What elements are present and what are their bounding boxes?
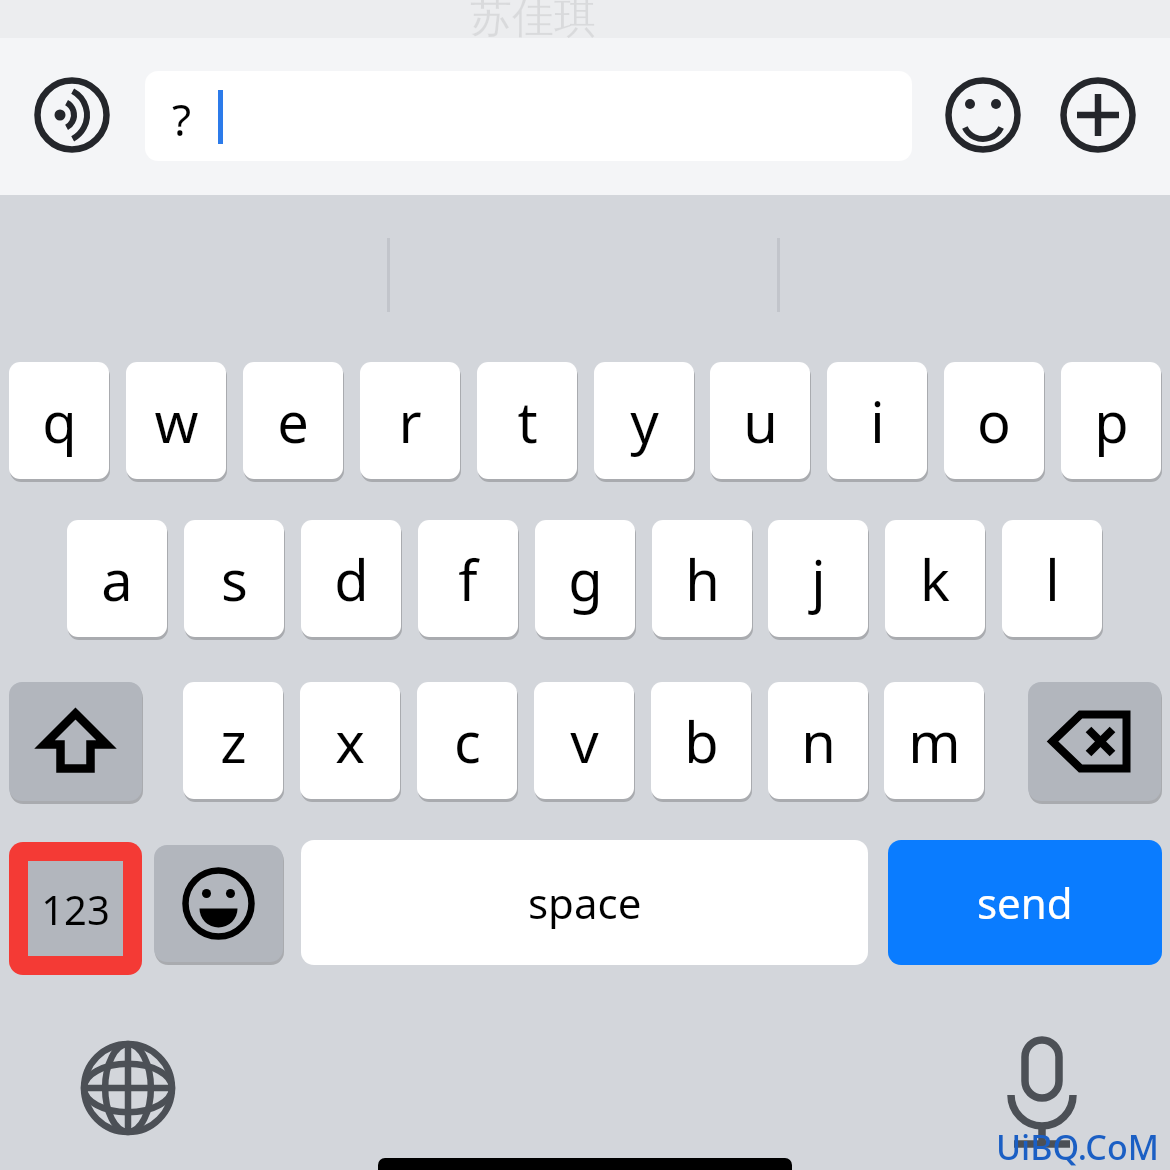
staticText: s bbox=[221, 541, 248, 617]
staticText: k bbox=[920, 541, 950, 617]
button[interactable]: 123 bbox=[9, 842, 142, 975]
button[interactable]: Emoji bbox=[945, 77, 1021, 153]
staticText: c bbox=[454, 703, 481, 779]
button[interactable]: z bbox=[183, 682, 283, 799]
staticText: t bbox=[517, 383, 538, 459]
staticText: e bbox=[277, 383, 309, 459]
button[interactable]: c bbox=[417, 682, 517, 799]
button[interactable]: w bbox=[126, 362, 226, 479]
button[interactable]: Dictation bbox=[992, 1030, 1092, 1130]
button[interactable]: f bbox=[418, 520, 518, 637]
staticText: g bbox=[568, 541, 603, 617]
staticText: j bbox=[811, 541, 826, 617]
button[interactable]: s bbox=[184, 520, 284, 637]
button[interactable] bbox=[145, 71, 912, 161]
button[interactable]: y bbox=[594, 362, 694, 479]
button[interactable]: t bbox=[477, 362, 577, 479]
staticText: n bbox=[801, 703, 836, 779]
button[interactable]: Emoji keyboard bbox=[154, 845, 283, 962]
button[interactable]: Add attachment bbox=[1060, 77, 1136, 153]
button[interactable]: Backspace bbox=[1028, 682, 1161, 801]
button[interactable]: send bbox=[888, 840, 1162, 965]
staticText: f bbox=[458, 541, 478, 617]
staticText: r bbox=[398, 383, 422, 459]
staticText: u bbox=[743, 383, 778, 459]
staticText: m bbox=[908, 703, 961, 779]
button[interactable]: Change keyboard language bbox=[78, 1038, 178, 1138]
button[interactable]: l bbox=[1002, 520, 1102, 637]
button[interactable]: d bbox=[301, 520, 401, 637]
button[interactable]: e bbox=[243, 362, 343, 479]
button[interactable]: u bbox=[710, 362, 810, 479]
button[interactable]: b bbox=[651, 682, 751, 799]
staticText: UiBQ.CoM bbox=[996, 1124, 1159, 1170]
staticText: i bbox=[870, 383, 885, 459]
button[interactable]: j bbox=[768, 520, 868, 637]
button[interactable]: p bbox=[1061, 362, 1161, 479]
staticText: l bbox=[1045, 541, 1060, 617]
staticText: v bbox=[570, 703, 599, 779]
staticText: ? bbox=[172, 89, 192, 149]
staticText: x bbox=[335, 703, 365, 779]
button[interactable]: space bbox=[301, 840, 868, 965]
button[interactable]: a bbox=[67, 520, 167, 637]
staticText: 123 bbox=[41, 882, 110, 936]
button[interactable]: r bbox=[360, 362, 460, 479]
button[interactable]: n bbox=[768, 682, 868, 799]
button[interactable]: g bbox=[535, 520, 635, 637]
staticText: p bbox=[1094, 383, 1129, 459]
staticText: d bbox=[334, 541, 369, 617]
staticText: y bbox=[630, 383, 659, 459]
staticText: z bbox=[220, 703, 247, 779]
staticText: h bbox=[685, 541, 720, 617]
button[interactable]: q bbox=[9, 362, 109, 479]
button[interactable]: h bbox=[652, 520, 752, 637]
staticText: q bbox=[42, 383, 77, 459]
staticText: b bbox=[684, 703, 719, 779]
button[interactable]: Voice message bbox=[34, 77, 110, 153]
staticText: o bbox=[977, 383, 1011, 459]
button[interactable]: v bbox=[534, 682, 634, 799]
button[interactable]: k bbox=[885, 520, 985, 637]
button[interactable]: m bbox=[884, 682, 984, 799]
button[interactable]: Shift bbox=[9, 682, 142, 801]
button[interactable]: x bbox=[300, 682, 400, 799]
staticText: a bbox=[101, 541, 133, 617]
staticText: w bbox=[154, 383, 199, 459]
button[interactable]: o bbox=[944, 362, 1044, 479]
staticText: space bbox=[528, 874, 642, 931]
staticText: send bbox=[977, 874, 1073, 931]
staticText: 苏佳琪 bbox=[470, 0, 596, 45]
button[interactable]: i bbox=[827, 362, 927, 479]
